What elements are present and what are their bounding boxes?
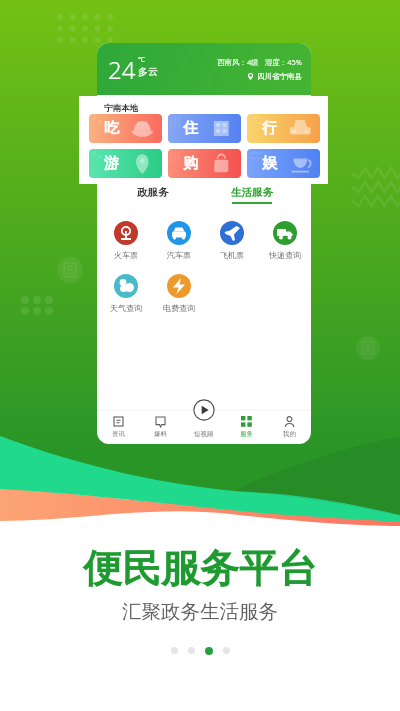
button[interactable]: 政服务 bbox=[125, 186, 181, 208]
button[interactable]: 汽车票 bbox=[152, 221, 205, 260]
staticText: 宁南本地 bbox=[104, 103, 138, 114]
button[interactable]: 服务 bbox=[225, 410, 268, 444]
button[interactable]: 快递查询 bbox=[258, 221, 311, 260]
staticText: 西南风：4级 湿度：45% bbox=[217, 57, 302, 67]
staticText: 资讯 bbox=[112, 430, 125, 438]
button[interactable]: 天气查询 bbox=[99, 274, 152, 313]
staticText: ℃ bbox=[138, 55, 145, 65]
button[interactable]: 短视频 bbox=[182, 410, 225, 444]
staticText: 政服务 bbox=[137, 186, 169, 199]
staticText: 便民服务平台 bbox=[83, 544, 317, 593]
staticText: 快递查询 bbox=[269, 250, 301, 260]
button[interactable]: 住 bbox=[168, 114, 241, 143]
button[interactable]: 娱 bbox=[247, 149, 320, 178]
staticText: 汽车票 bbox=[167, 250, 191, 260]
button[interactable]: 爆料 bbox=[139, 410, 182, 444]
staticText: 娱 bbox=[262, 154, 277, 173]
staticText: 飞机票 bbox=[220, 250, 244, 260]
staticText: 购 bbox=[183, 154, 198, 173]
staticText: 爆料 bbox=[154, 430, 167, 438]
staticText: 四川省宁南县 bbox=[257, 72, 302, 81]
button[interactable]: 短视频 bbox=[193, 399, 215, 421]
staticText: 我的 bbox=[283, 430, 296, 438]
staticText: 住 bbox=[183, 119, 198, 138]
staticText: 电费查询 bbox=[163, 303, 195, 313]
staticText: 多云 bbox=[138, 65, 158, 78]
button[interactable]: 游 bbox=[89, 149, 162, 178]
button[interactable]: 电费查询 bbox=[152, 274, 205, 313]
button[interactable]: 行 bbox=[247, 114, 320, 143]
staticText: 汇聚政务生活服务 bbox=[122, 599, 278, 624]
staticText: 短视频 bbox=[194, 430, 214, 438]
button[interactable]: 生活服务 bbox=[225, 186, 279, 204]
staticText: 24 bbox=[108, 53, 136, 86]
staticText: 天气查询 bbox=[110, 303, 142, 313]
button[interactable]: 吃 bbox=[89, 114, 162, 143]
staticText: 火车票 bbox=[114, 250, 138, 260]
button[interactable]: 火车票 bbox=[99, 221, 152, 260]
staticText: 行 bbox=[262, 119, 277, 138]
button[interactable]: 飞机票 bbox=[205, 221, 258, 260]
staticText: 吃 bbox=[104, 119, 119, 138]
button[interactable]: 购 bbox=[168, 149, 241, 178]
button[interactable]: 资讯 bbox=[97, 410, 139, 444]
staticText: 服务 bbox=[240, 430, 253, 438]
staticText: 生活服务 bbox=[231, 186, 273, 199]
button[interactable]: 我的 bbox=[268, 410, 311, 444]
staticText: 游 bbox=[104, 154, 119, 173]
